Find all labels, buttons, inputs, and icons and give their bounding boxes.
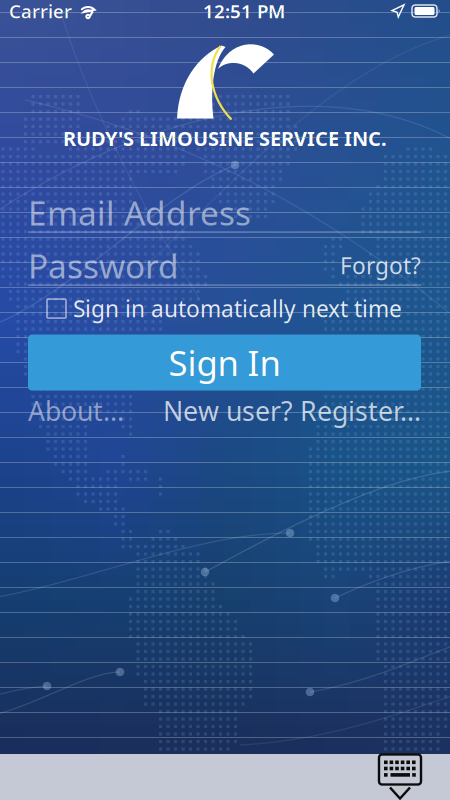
staticText: Email Address xyxy=(28,190,251,235)
button[interactable]: Forgot? xyxy=(340,250,421,281)
staticText: New user? Register... xyxy=(163,393,421,428)
staticText: Carrier xyxy=(9,0,72,23)
staticText: Sign In xyxy=(168,339,280,385)
button[interactable]: Sign in automatically next time xyxy=(47,294,402,324)
staticText: Password xyxy=(28,243,179,288)
button[interactable]: Sign In xyxy=(28,335,421,391)
staticText: About... xyxy=(28,393,124,428)
staticText: Sign in automatically next time xyxy=(73,293,402,324)
staticText: RUDY'S LIMOUSINE SERVICE INC. xyxy=(63,125,387,152)
button[interactable]: New user? Register... xyxy=(163,393,421,428)
staticText: Forgot? xyxy=(340,250,421,281)
button[interactable]: About... xyxy=(28,393,124,428)
staticText: 12:51 PM xyxy=(203,0,285,23)
button[interactable]: Hide keyboard xyxy=(374,754,426,800)
